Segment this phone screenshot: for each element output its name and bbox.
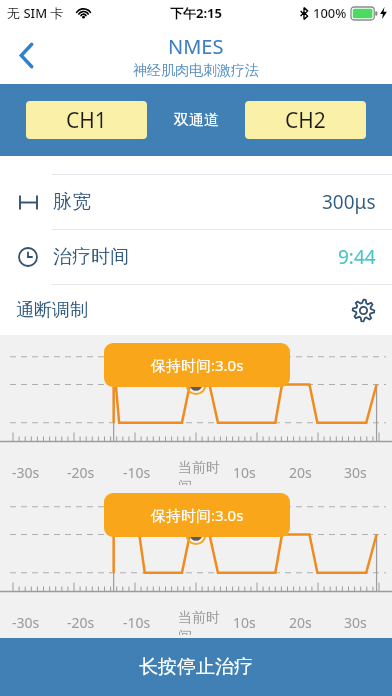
- staticText: -30s: [12, 463, 40, 482]
- button[interactable]: 脉宽: [0, 175, 392, 229]
- staticText: 100%: [313, 4, 347, 22]
- staticText: 双通道: [174, 111, 219, 130]
- staticText: 长按停止治疗: [139, 655, 253, 679]
- button[interactable]: Back: [0, 26, 52, 84]
- staticText: -10s: [123, 613, 151, 632]
- staticText: 无 SIM 卡: [7, 4, 64, 22]
- button[interactable]: Settings: [350, 297, 376, 323]
- staticText: CH2: [285, 106, 326, 135]
- staticText: -30s: [12, 613, 40, 632]
- button[interactable]: CH1: [26, 101, 147, 139]
- staticText: 脉宽: [53, 190, 91, 214]
- staticText: 保持时间:3.0s: [151, 355, 244, 375]
- staticText: 神经肌肉电刺激疗法: [133, 62, 259, 80]
- staticText: 20s: [289, 613, 312, 632]
- staticText: 10s: [233, 463, 256, 482]
- staticText: 治疗时间: [53, 245, 129, 269]
- staticText: 当前时间: [178, 609, 226, 635]
- staticText: CH1: [66, 106, 107, 135]
- staticText: -10s: [123, 463, 151, 482]
- staticText: NMES: [168, 33, 224, 60]
- staticText: 9:44: [338, 244, 376, 270]
- staticText: 当前时间: [178, 459, 226, 485]
- staticText: 30s: [344, 613, 367, 632]
- button[interactable]: 治疗时间: [0, 230, 392, 284]
- staticText: -20s: [67, 613, 95, 632]
- staticText: 通断调制: [16, 299, 88, 322]
- button[interactable]: 长按停止治疗: [0, 638, 392, 696]
- staticText: 保持时间:3.0s: [151, 505, 244, 525]
- button[interactable]: CH2: [245, 101, 366, 139]
- staticText: 下午2:15: [170, 4, 222, 22]
- staticText: 300μs: [322, 189, 376, 215]
- staticText: -20s: [67, 463, 95, 482]
- button[interactable]: 通断调制: [0, 285, 392, 335]
- staticText: 30s: [344, 463, 367, 482]
- staticText: 10s: [233, 613, 256, 632]
- staticText: 20s: [289, 463, 312, 482]
